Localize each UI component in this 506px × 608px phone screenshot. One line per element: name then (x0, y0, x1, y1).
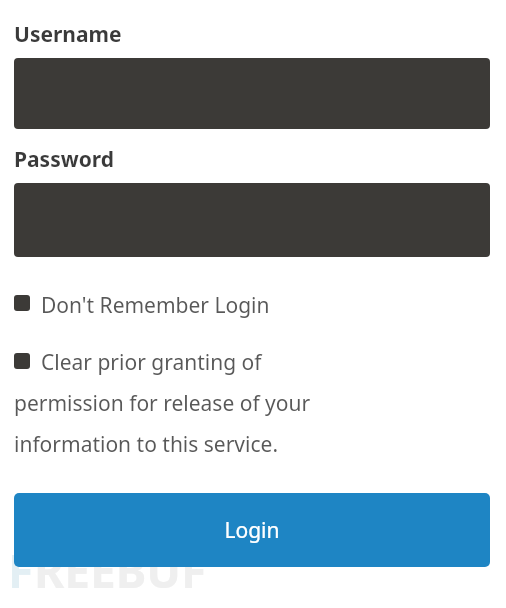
button[interactable]: Login (14, 493, 490, 567)
staticText: Login (224, 516, 280, 545)
staticText: Password (14, 145, 115, 174)
staticText: F (8, 539, 34, 602)
button[interactable]: Clear prior granting of (14, 348, 434, 459)
staticText: Username (14, 20, 122, 49)
staticText: Don't Remember Login (41, 291, 270, 320)
button[interactable]: Username input field (14, 58, 490, 129)
staticText: REEBUF (34, 539, 207, 602)
button[interactable]: Password input field (14, 183, 490, 257)
staticText: permission for release of your (14, 389, 311, 418)
button[interactable]: Don't Remember Login (14, 291, 490, 320)
staticText: information to this service. (14, 430, 279, 459)
staticText: Clear prior granting of (41, 348, 262, 377)
